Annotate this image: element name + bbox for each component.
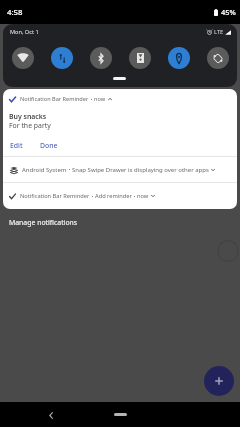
staticText: Edit — [10, 141, 23, 150]
staticText: For the party — [9, 121, 51, 130]
staticText: Done — [40, 141, 58, 150]
button[interactable]: Android System — [3, 157, 237, 182]
button[interactable]: Wi-Fi — [12, 47, 34, 69]
staticText: Mon, Oct 1 — [10, 28, 39, 36]
button[interactable]: Location — [168, 47, 190, 69]
button[interactable]: Back — [42, 406, 60, 424]
staticText: Android System — [22, 166, 67, 174]
button[interactable]: Notification Bar Reminder — [3, 89, 237, 156]
staticText: Buy snacks — [9, 112, 47, 121]
button[interactable]: Home — [100, 402, 140, 427]
button[interactable]: Flashlight — [129, 47, 151, 69]
button[interactable]: Add — [204, 366, 234, 396]
button[interactable]: Edit — [5, 139, 28, 152]
staticText: Notification Bar Reminder — [20, 192, 90, 200]
staticText: now — [137, 192, 149, 200]
staticText: 4:58 — [7, 7, 23, 18]
staticText: Manage notifications — [9, 218, 78, 227]
button[interactable]: Auto-rotate — [207, 47, 229, 69]
staticText: Notification Bar Reminder — [20, 95, 89, 103]
staticText: now — [94, 95, 106, 103]
button[interactable]: Notification Bar Reminder — [3, 183, 237, 209]
button[interactable]: Done — [35, 139, 63, 152]
staticText: LTE — [214, 28, 224, 36]
staticText: 45% — [221, 7, 236, 17]
staticText: Snap Swipe Drawer is displaying over oth… — [72, 166, 209, 174]
staticText: Add reminder — [95, 192, 132, 200]
button[interactable]: Bluetooth — [90, 47, 112, 69]
button[interactable]: Mobile data — [51, 47, 73, 69]
button[interactable]: Manage notifications — [0, 215, 240, 230]
